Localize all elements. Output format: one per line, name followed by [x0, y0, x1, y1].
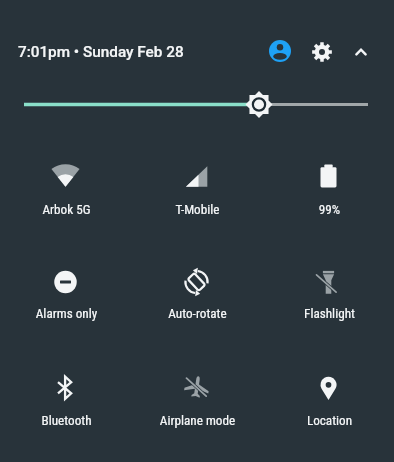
staticText: Airplane mode [132, 413, 263, 428]
staticText: Flashlight [264, 306, 394, 321]
staticText: 7:01pm • Sunday Feb 28 [18, 43, 184, 61]
button[interactable]: Brightness [0, 88, 394, 121]
staticText: Alarms only [1, 306, 132, 321]
button[interactable]: Airplane mode [131, 356, 262, 422]
staticText: 99% [264, 202, 394, 217]
button[interactable]: Arbok 5G [0, 144, 131, 210]
button[interactable]: Collapse quick settings [345, 36, 377, 68]
button[interactable]: Location [263, 356, 394, 422]
staticText: Arbok 5G [1, 202, 132, 217]
staticText: Bluetooth [1, 413, 132, 428]
staticText: Auto-rotate [132, 306, 263, 321]
button[interactable]: 7:01pm • Sunday Feb 28 [8, 35, 174, 67]
button[interactable]: Alarms only [0, 250, 131, 316]
button[interactable]: 99% [263, 144, 394, 210]
button[interactable]: Flashlight [263, 250, 394, 316]
staticText: T-Mobile [132, 202, 263, 217]
button[interactable]: Auto-rotate [131, 250, 262, 316]
button[interactable]: Bluetooth [0, 356, 131, 422]
button[interactable]: T-Mobile [131, 144, 262, 210]
staticText: Location [264, 413, 394, 428]
button[interactable]: User account [264, 35, 296, 67]
button[interactable]: Settings [306, 36, 338, 68]
